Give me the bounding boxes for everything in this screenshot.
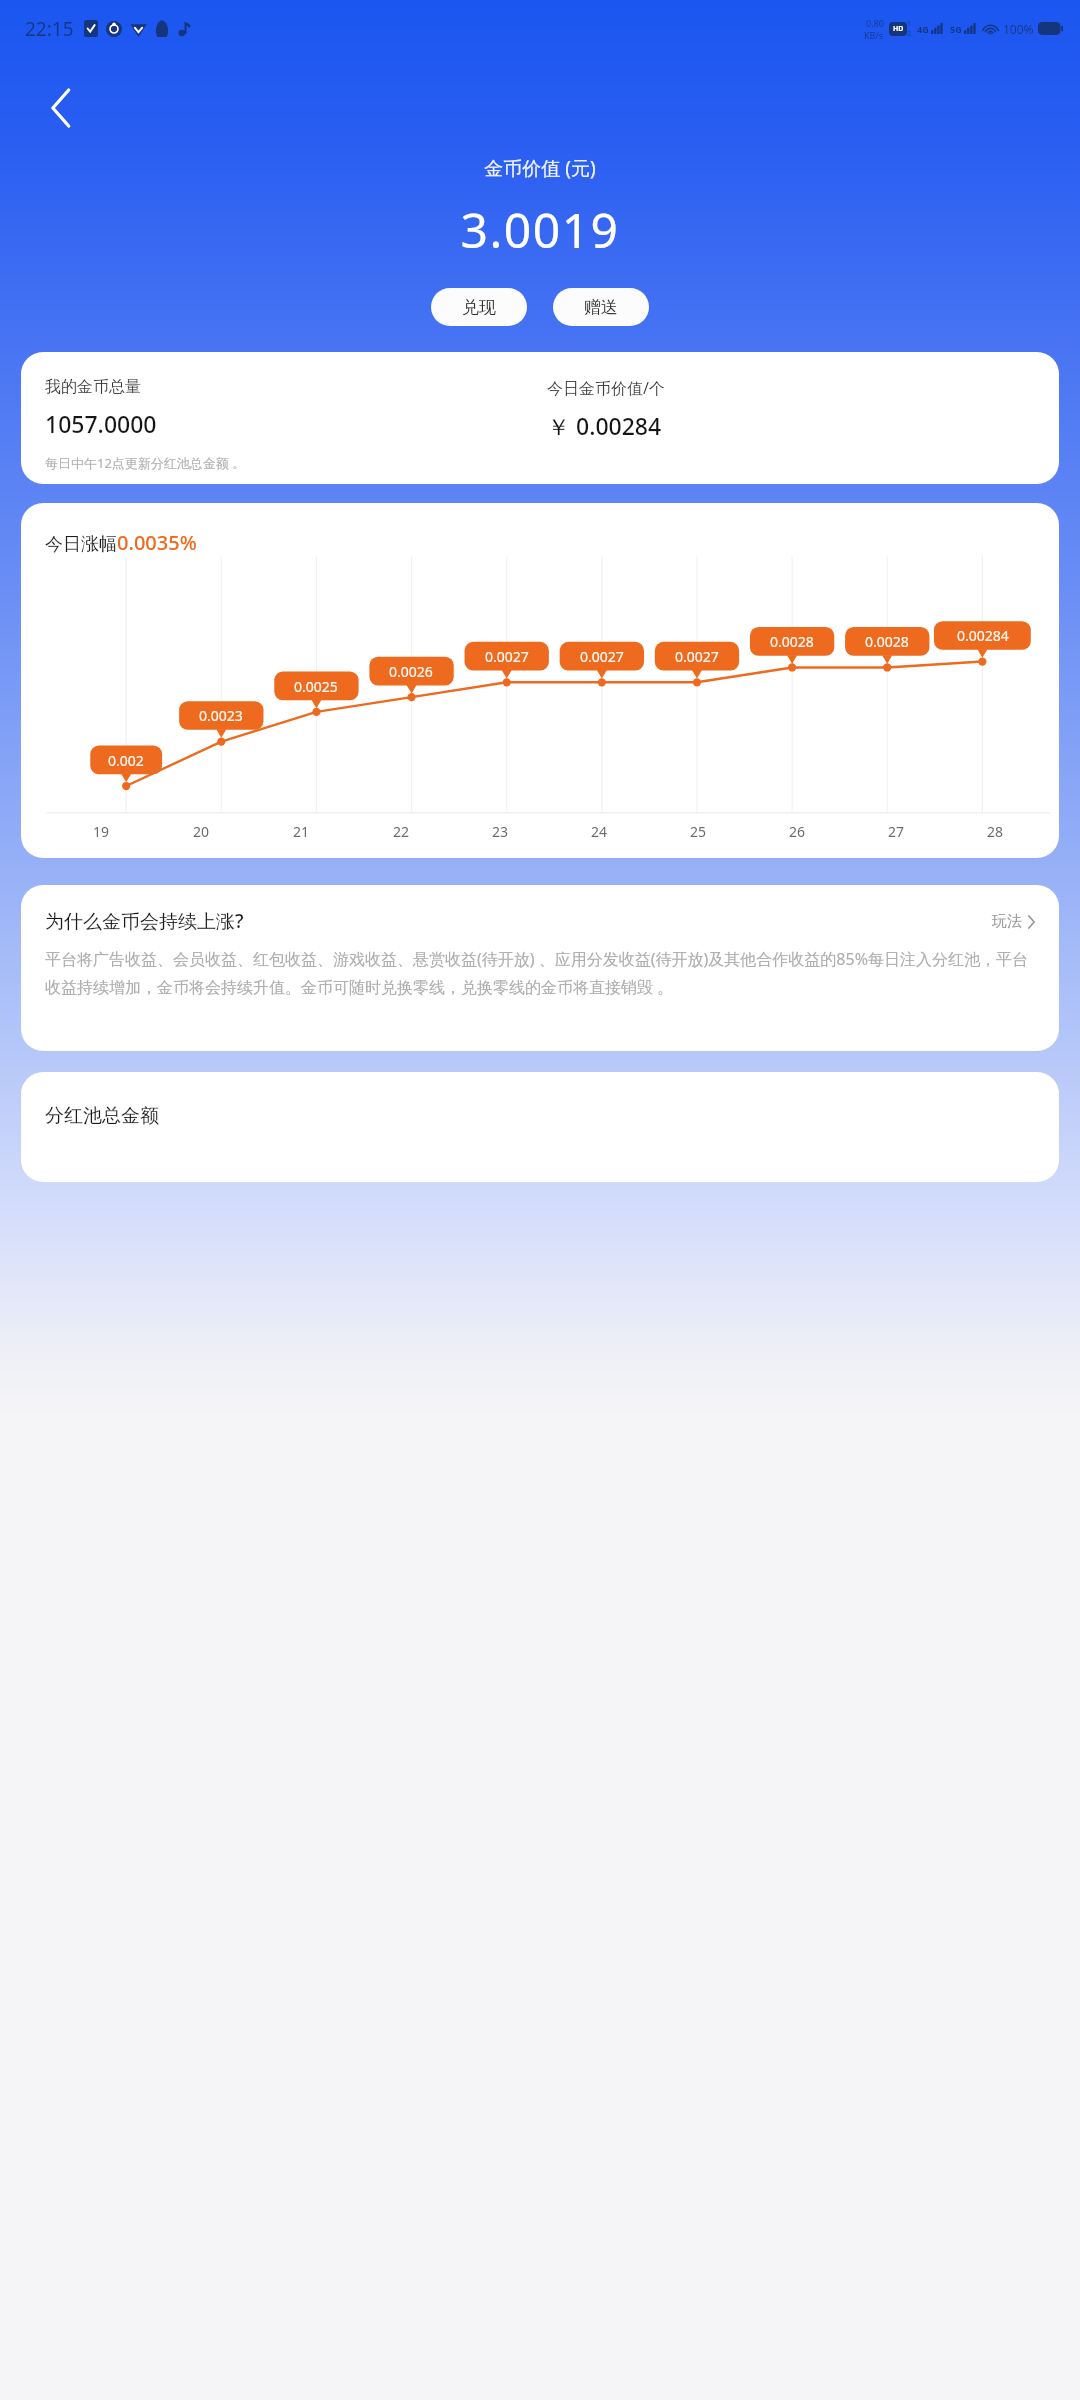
staticText: 兑现 [462, 297, 496, 318]
staticText: 0.0027 [485, 647, 529, 666]
staticText: 1 [907, 19, 912, 29]
staticText: 平台将广告收益、会员收益、红包收益、游戏收益、悬赏收益(待开放) 、应用分发收益… [45, 948, 1035, 998]
staticText: 19 [93, 822, 110, 841]
staticText: 24 [591, 822, 608, 841]
staticText: 玩法 [992, 912, 1022, 931]
staticText: 5G [950, 23, 962, 35]
staticText: 0.0035% [117, 529, 197, 556]
staticText: 0.0027 [675, 647, 719, 666]
staticText: 21 [293, 822, 310, 841]
staticText: 0.80 [866, 17, 884, 29]
button[interactable]: 兑现 [431, 288, 527, 326]
button[interactable]: 赠送 [553, 288, 649, 326]
staticText: 我的金币总量 [45, 377, 141, 397]
staticText: 22 [393, 822, 410, 841]
staticText: 0.0023 [199, 706, 243, 725]
staticText: KB/s [864, 29, 884, 41]
staticText: 1057.0000 [45, 408, 157, 439]
staticText: 100% [1003, 21, 1034, 37]
button[interactable]: Back [30, 77, 92, 139]
staticText: 0.00284 [957, 626, 1009, 645]
button[interactable]: 玩法 [984, 912, 1035, 931]
staticText: 25 [690, 822, 707, 841]
staticText: 0.0027 [580, 647, 624, 666]
staticText: 4G [917, 23, 929, 35]
staticText: 为什么金币会持续上涨? [45, 908, 244, 934]
staticText: 28 [987, 822, 1004, 841]
staticText: 27 [888, 822, 905, 841]
staticText: 0.0025 [294, 677, 338, 696]
staticText: 23 [492, 822, 509, 841]
staticText: 0.0028 [865, 632, 909, 651]
staticText: 金币价值 (元) [484, 155, 596, 181]
staticText: 26 [789, 822, 806, 841]
staticText: HD [893, 24, 904, 34]
staticText: ￥ 0.00284 [547, 410, 662, 441]
staticText: 20 [193, 822, 210, 841]
staticText: 2 [907, 29, 912, 39]
staticText: 22:15 [25, 16, 74, 42]
staticText: 0.002 [108, 751, 144, 770]
staticText: 赠送 [584, 297, 618, 318]
staticText: 0.0026 [389, 662, 433, 681]
staticText: 今日金币价值/个 [547, 377, 665, 399]
staticText: 今日涨幅 [45, 533, 117, 556]
staticText: 0.0028 [770, 632, 814, 651]
staticText: 每日中午12点更新分红池总金额 。 [45, 454, 246, 472]
staticText: 3.0019 [460, 197, 620, 262]
staticText: 分红池总金额 [45, 1104, 159, 1128]
